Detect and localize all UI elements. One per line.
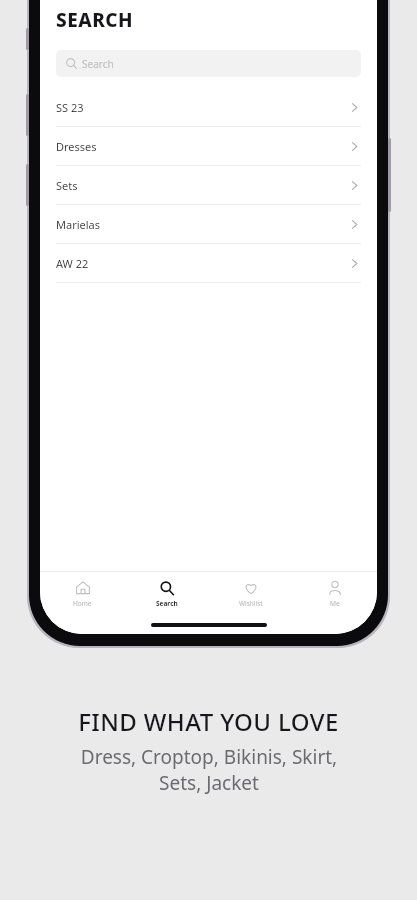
button[interactable]: AW 22	[40, 244, 377, 283]
staticText: AW 22	[56, 256, 89, 271]
staticText: Search	[82, 57, 114, 71]
button[interactable]: Sets	[40, 166, 377, 205]
button[interactable]: Wishlist	[209, 572, 293, 616]
staticText: Wishlist	[239, 599, 263, 608]
staticText: Dress, Croptop, Bikinis, Skirt, Sets, Ja…	[44, 744, 374, 795]
staticText: SS 23	[56, 100, 84, 115]
staticText: FIND WHAT YOU LOVE	[78, 705, 339, 738]
button[interactable]: Dresses	[40, 127, 377, 166]
button[interactable]: Me	[293, 572, 377, 616]
staticText: Sets	[56, 178, 78, 193]
staticText: Dresses	[56, 139, 97, 154]
button[interactable]: Home	[40, 572, 125, 616]
button[interactable]: SS 23	[40, 88, 377, 127]
staticText: Me	[330, 599, 340, 608]
button[interactable]: Marielas	[40, 205, 377, 244]
button[interactable]: Search	[56, 50, 361, 77]
button[interactable]: Search	[125, 572, 209, 616]
staticText: Search	[156, 599, 178, 608]
staticText: Home	[73, 599, 92, 608]
staticText: Marielas	[56, 217, 101, 232]
staticText: SEARCH	[56, 7, 134, 33]
